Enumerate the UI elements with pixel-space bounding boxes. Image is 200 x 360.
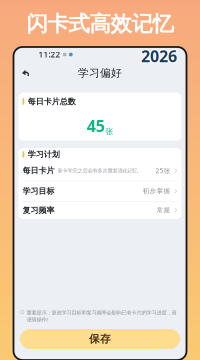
staticText: 闪卡式高效记忆 bbox=[26, 11, 173, 37]
button[interactable]: 复习频率 bbox=[22, 202, 177, 219]
staticText: 保存 bbox=[89, 332, 111, 345]
staticText: 2026 bbox=[140, 45, 176, 66]
staticText: 每日卡片总数 bbox=[28, 97, 76, 106]
staticText: 2026 bbox=[140, 45, 176, 67]
staticText: 重要提示：更改学习目标和复习频率会影响已有卡片的学习进度，请谨慎操作! bbox=[26, 309, 176, 323]
button[interactable]: 返回 bbox=[17, 65, 33, 81]
staticText: 2026 bbox=[142, 45, 178, 66]
staticText: 学习计划 bbox=[28, 149, 60, 159]
staticText: 复习频率 bbox=[22, 205, 54, 215]
staticText: 2026 bbox=[140, 46, 176, 67]
button[interactable]: 保存 bbox=[20, 329, 180, 349]
staticText: 2026 bbox=[141, 46, 177, 68]
staticText: 初步掌握 bbox=[142, 187, 170, 195]
staticText: 常规 bbox=[156, 206, 170, 214]
staticText: 25张 bbox=[155, 166, 170, 175]
staticText: 每日卡片 bbox=[22, 166, 54, 175]
staticText: 张 bbox=[105, 127, 113, 136]
staticText: 新卡学完之后会有多次重复强化记忆 bbox=[57, 167, 137, 174]
staticText: 2026 bbox=[141, 44, 177, 65]
button[interactable]: 学习目标 bbox=[22, 181, 177, 201]
staticText: 45 bbox=[87, 115, 105, 136]
staticText: 2026 bbox=[141, 45, 177, 67]
staticText: 学习偏好 bbox=[78, 66, 122, 79]
staticText: 2026 bbox=[142, 45, 178, 67]
staticText: 2026 bbox=[142, 46, 178, 67]
staticText: 学习目标 bbox=[22, 186, 54, 196]
button[interactable]: 每日卡片 bbox=[22, 161, 177, 181]
staticText: 11:22 bbox=[38, 49, 60, 60]
